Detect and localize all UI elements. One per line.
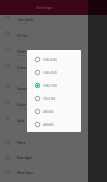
staticText: Share: [17, 141, 26, 145]
staticText: More Apps: [17, 171, 33, 175]
staticText: 1440x2560: [43, 71, 57, 75]
button[interactable]: 1080x1920: [27, 79, 81, 92]
staticText: 720x1280: [43, 97, 56, 101]
button[interactable]: Audio: [0, 116, 88, 133]
staticText: Frame rate: [17, 66, 31, 69]
staticText: the video: [17, 54, 26, 57]
button[interactable]: 480x854: [27, 105, 81, 118]
button[interactable]: More Apps: [0, 165, 88, 180]
staticText: Audio: [17, 119, 25, 122]
staticText: 1080x1920: [43, 84, 57, 88]
button[interactable]: Video Quality: [0, 15, 88, 31]
button[interactable]: 1600x2560: [27, 53, 81, 66]
staticText: Bitrate: [17, 50, 26, 53]
staticText: File Type: [17, 34, 28, 37]
staticText: ARC: [17, 123, 21, 126]
button[interactable]: 720x1280: [27, 92, 81, 105]
staticText: Rate Apps: [17, 156, 33, 160]
staticText: /storage/emu: [17, 107, 30, 110]
staticText: Settings: [36, 5, 53, 10]
button[interactable]: Frame rate: [0, 63, 88, 84]
staticText: 480x800: [43, 123, 54, 127]
staticText: 480x854: [43, 110, 54, 114]
staticText: .mp4: [17, 38, 22, 41]
staticText: 1600x2560: [43, 58, 57, 62]
button[interactable]: Bitrate: [0, 47, 88, 63]
staticText: 1080x1920: [17, 22, 28, 25]
button[interactable]: File Type: [0, 31, 88, 47]
button[interactable]: 480x800: [27, 118, 81, 131]
staticText: 3 (sec): [17, 91, 23, 94]
staticText: Video Quality: [17, 18, 34, 21]
button[interactable]: Output: [0, 100, 88, 116]
staticText: 2 MB: [17, 58, 22, 61]
button[interactable]: 1440x2560: [27, 66, 81, 79]
staticText: Output: [17, 103, 26, 106]
button[interactable]: Rate Apps: [0, 150, 88, 165]
button[interactable]: Share: [0, 135, 88, 150]
button[interactable]: Record time: [0, 84, 88, 100]
staticText: Record time: [17, 87, 33, 90]
staticText: 30 fps: [17, 70, 23, 73]
